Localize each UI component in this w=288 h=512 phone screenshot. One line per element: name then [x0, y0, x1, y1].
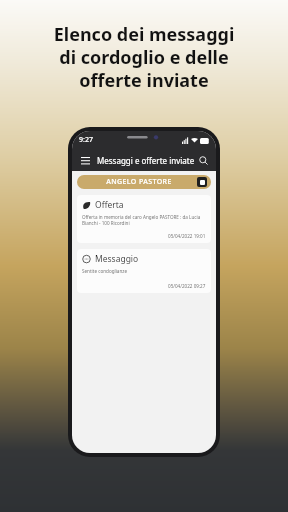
staticText: Offerta in memoria del caro Angelo PASTO… — [82, 214, 206, 226]
staticText: Offerta — [95, 199, 124, 211]
staticText: ANGELO PASTORE — [81, 177, 197, 187]
staticText: 05/04/2022 19:01 — [168, 233, 206, 239]
staticText: Sentite condoglianze — [82, 268, 128, 274]
staticText: 9:27 — [79, 135, 93, 145]
staticText: Elenco dei messaggi di cordoglio e delle… — [16, 22, 272, 92]
staticText: Messaggio — [95, 253, 139, 265]
button[interactable]: Messaggio — [77, 249, 211, 293]
button[interactable]: ANGELO PASTORE — [77, 175, 211, 189]
staticText: 05/04/2022 09:27 — [168, 283, 206, 289]
button[interactable]: Search — [196, 153, 210, 167]
button[interactable]: Menu — [78, 153, 92, 167]
staticText: Messaggi e offerte inviate — [97, 155, 196, 166]
button[interactable]: Offerta — [77, 195, 211, 243]
